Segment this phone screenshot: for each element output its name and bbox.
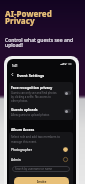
staticText: Guests can only see and find photos by c…	[11, 91, 57, 103]
button[interactable]: Invite	[14, 177, 69, 184]
button[interactable]: Search by username or name	[12, 166, 70, 172]
staticText: 1:41	[12, 64, 18, 68]
staticText: Control what guests see and upload!	[5, 37, 73, 48]
button[interactable]: Photographer	[11, 147, 68, 152]
staticText: Event Settings	[17, 73, 45, 78]
staticText: Album Access	[11, 127, 35, 132]
staticText: Invite	[37, 180, 47, 184]
staticText: Photographer	[11, 148, 32, 152]
button[interactable]: Toggle	[64, 91, 71, 95]
button[interactable]: Back	[10, 72, 15, 77]
staticText: AI-Powered Privacy	[5, 8, 52, 26]
staticText: Select role and add two members to manag…	[11, 135, 61, 144]
staticText: Admin	[11, 158, 21, 162]
staticText: Guests uploads	[11, 107, 38, 112]
staticText: Face recognition privacy	[11, 85, 53, 90]
button[interactable]: Admin	[11, 157, 68, 162]
button[interactable]: Toggle	[64, 109, 71, 113]
staticText: Search by username or name	[15, 167, 52, 171]
staticText: Allow guests to upload photos	[11, 113, 50, 117]
